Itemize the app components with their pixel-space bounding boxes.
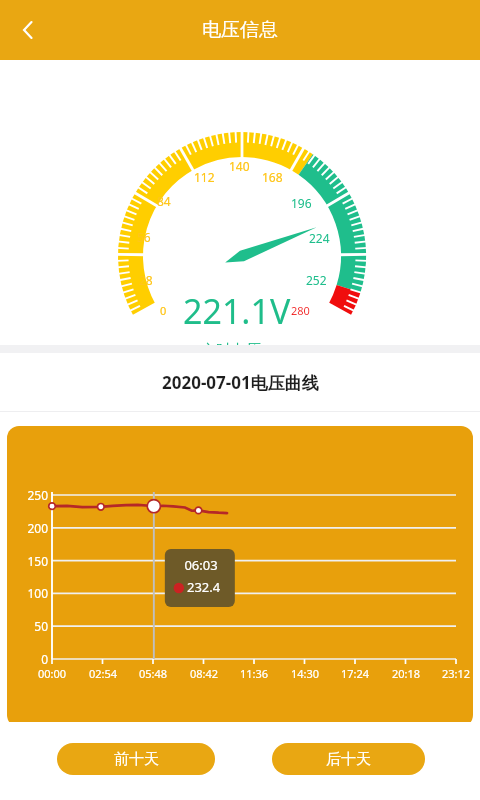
button[interactable]: 前十天 [57,743,215,775]
staticText: 252 [306,272,327,288]
staticText: 200 [15,520,48,536]
staticText: 电压信息 [202,18,278,42]
staticText: 后十天 [326,750,371,769]
staticText: 实时电压 [201,341,261,360]
staticText: 08:42 [183,666,225,681]
staticText: 168 [262,169,283,185]
staticText: 196 [291,195,312,211]
staticText: 56 [137,229,151,245]
staticText: 280 [291,303,310,318]
staticText: 2020-07-01电压曲线 [162,371,319,394]
staticText: 232.4 [187,578,231,596]
button[interactable]: 后十天 [272,743,425,775]
staticText: 前十天 [114,750,159,769]
staticText: 06:03 [179,556,223,574]
staticText: 11:36 [233,666,275,681]
staticText: 250 [15,487,48,503]
staticText: 140 [229,158,250,174]
staticText: 02:54 [82,666,124,681]
button[interactable]: Back [4,6,52,54]
staticText: 112 [194,169,215,185]
staticText: 17:24 [334,666,376,681]
staticText: 224 [309,230,330,246]
staticText: 05:48 [132,666,174,681]
staticText: 14:30 [284,666,326,681]
staticText: 23:12 [435,666,473,681]
staticText: 28 [139,272,153,288]
staticText: 00:00 [31,666,73,681]
staticText: 221.1V [183,288,291,334]
staticText: 50 [15,618,48,634]
staticText: 0 [160,303,167,318]
staticText: 100 [15,585,48,601]
staticText: 84 [157,193,171,209]
staticText: 150 [15,553,48,569]
staticText: 0 [15,651,48,667]
staticText: 20:18 [385,666,427,681]
